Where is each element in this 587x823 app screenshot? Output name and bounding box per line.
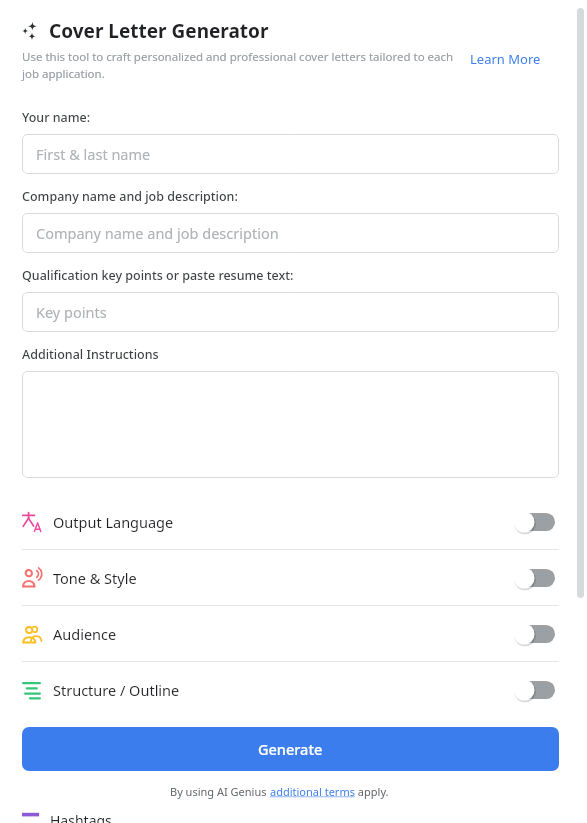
button[interactable]: Generate [22, 727, 559, 771]
button[interactable]: Audience [0, 606, 587, 661]
button[interactable]: Hashtags [0, 811, 587, 823]
staticText: Use this tool to craft personalized and … [22, 49, 462, 81]
button[interactable]: Structure / Outline [0, 662, 587, 717]
staticText: Audience [53, 624, 117, 644]
staticText: Cover Letter Generator [49, 18, 269, 44]
staticText: Qualification key points or paste resume… [22, 267, 294, 284]
staticText: First & last name [36, 144, 151, 164]
button[interactable]: Key points [22, 292, 559, 332]
button[interactable] [22, 371, 559, 478]
staticText: By using AI Genius [170, 784, 270, 799]
staticText: Hashtags [50, 811, 112, 823]
staticText: Your name: [22, 109, 91, 126]
staticText: Tone & Style [53, 568, 137, 588]
staticText: apply. [355, 784, 389, 799]
button[interactable]: Toggle option [513, 623, 555, 645]
staticText: Company name and job description: [22, 188, 238, 205]
button[interactable]: First & last name [22, 134, 559, 174]
button[interactable]: additional terms [270, 784, 355, 799]
button[interactable]: Toggle option [513, 511, 555, 533]
staticText: Additional Instructions [22, 346, 159, 363]
staticText: Company name and job description [36, 223, 279, 243]
staticText: Structure / Outline [53, 680, 180, 700]
button[interactable]: Output Language [0, 494, 587, 549]
button[interactable]: Learn More [470, 49, 541, 68]
other: AI sparkle [20, 21, 40, 41]
staticText: Output Language [53, 512, 174, 532]
button[interactable]: Toggle option [513, 679, 555, 701]
staticText: Learn More [470, 50, 541, 68]
staticText: Generate [258, 739, 323, 759]
button[interactable]: Toggle option [513, 567, 555, 589]
button[interactable]: Tone & Style [0, 550, 587, 605]
staticText: additional terms [270, 784, 355, 799]
button[interactable]: Company name and job description [22, 213, 559, 253]
staticText: Key points [36, 302, 107, 322]
